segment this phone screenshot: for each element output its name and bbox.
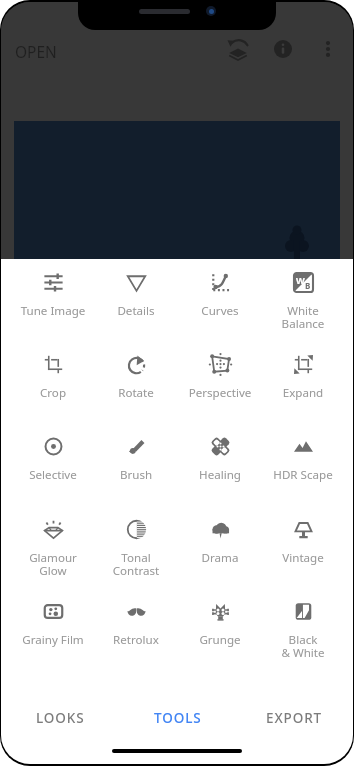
- button[interactable]: W: [261, 262, 345, 345]
- staticText: OPEN: [15, 41, 57, 62]
- staticText: Perspective: [178, 385, 262, 401]
- button[interactable]: Perspective: [178, 344, 262, 427]
- button[interactable]: Black & White: [261, 591, 345, 674]
- button[interactable]: Info: [268, 34, 298, 64]
- staticText: Grainy Film: [11, 632, 95, 648]
- staticText: Tonal Contrast: [94, 550, 178, 578]
- button[interactable]: Healing: [178, 426, 262, 509]
- staticText: Healing: [178, 467, 262, 483]
- button[interactable]: Glamour Glow: [11, 509, 95, 592]
- staticText: Glamour Glow: [11, 550, 95, 578]
- staticText: B: [305, 280, 311, 291]
- button[interactable]: Details: [94, 262, 178, 345]
- button[interactable]: Tonal Contrast: [94, 509, 178, 592]
- button[interactable]: EXPORT: [236, 696, 353, 740]
- staticText: Black & White: [261, 632, 345, 660]
- staticText: LOOKS: [36, 709, 85, 727]
- button[interactable]: Tune Image: [11, 262, 95, 345]
- staticText: Brush: [94, 467, 178, 483]
- staticText: Retrolux: [94, 632, 178, 648]
- staticText: HDR Scape: [261, 467, 345, 483]
- staticText: Selective: [11, 467, 95, 483]
- staticText: Tune Image: [11, 303, 95, 319]
- staticText: Details: [94, 303, 178, 319]
- button[interactable]: Vintage: [261, 509, 345, 592]
- button[interactable]: LOOKS: [1, 696, 119, 740]
- staticText: Drama: [178, 550, 262, 566]
- staticText: W: [296, 274, 305, 286]
- button[interactable]: Rotate: [94, 344, 178, 427]
- button[interactable]: TOOLS: [119, 696, 236, 740]
- button[interactable]: Grunge: [178, 591, 262, 674]
- button[interactable]: Retrolux: [94, 591, 178, 674]
- button[interactable]: Brush: [94, 426, 178, 509]
- button[interactable]: Expand: [261, 344, 345, 427]
- staticText: Expand: [261, 385, 345, 401]
- staticText: TOOLS: [154, 709, 202, 727]
- button[interactable]: HDR Scape: [261, 426, 345, 509]
- staticText: EXPORT: [266, 709, 323, 727]
- button[interactable]: Drama: [178, 509, 262, 592]
- staticText: Grunge: [178, 632, 262, 648]
- button[interactable]: Curves: [178, 262, 262, 345]
- button[interactable]: Selective: [11, 426, 95, 509]
- staticText: Vintage: [261, 550, 345, 566]
- staticText: Curves: [178, 303, 262, 319]
- button[interactable]: Crop: [11, 344, 95, 427]
- staticText: White Balance: [261, 303, 345, 331]
- staticText: Rotate: [94, 385, 178, 401]
- button[interactable]: Grainy Film: [11, 591, 95, 674]
- button[interactable]: Revert: [223, 34, 253, 64]
- button[interactable]: More options: [313, 34, 343, 64]
- staticText: Crop: [11, 385, 95, 401]
